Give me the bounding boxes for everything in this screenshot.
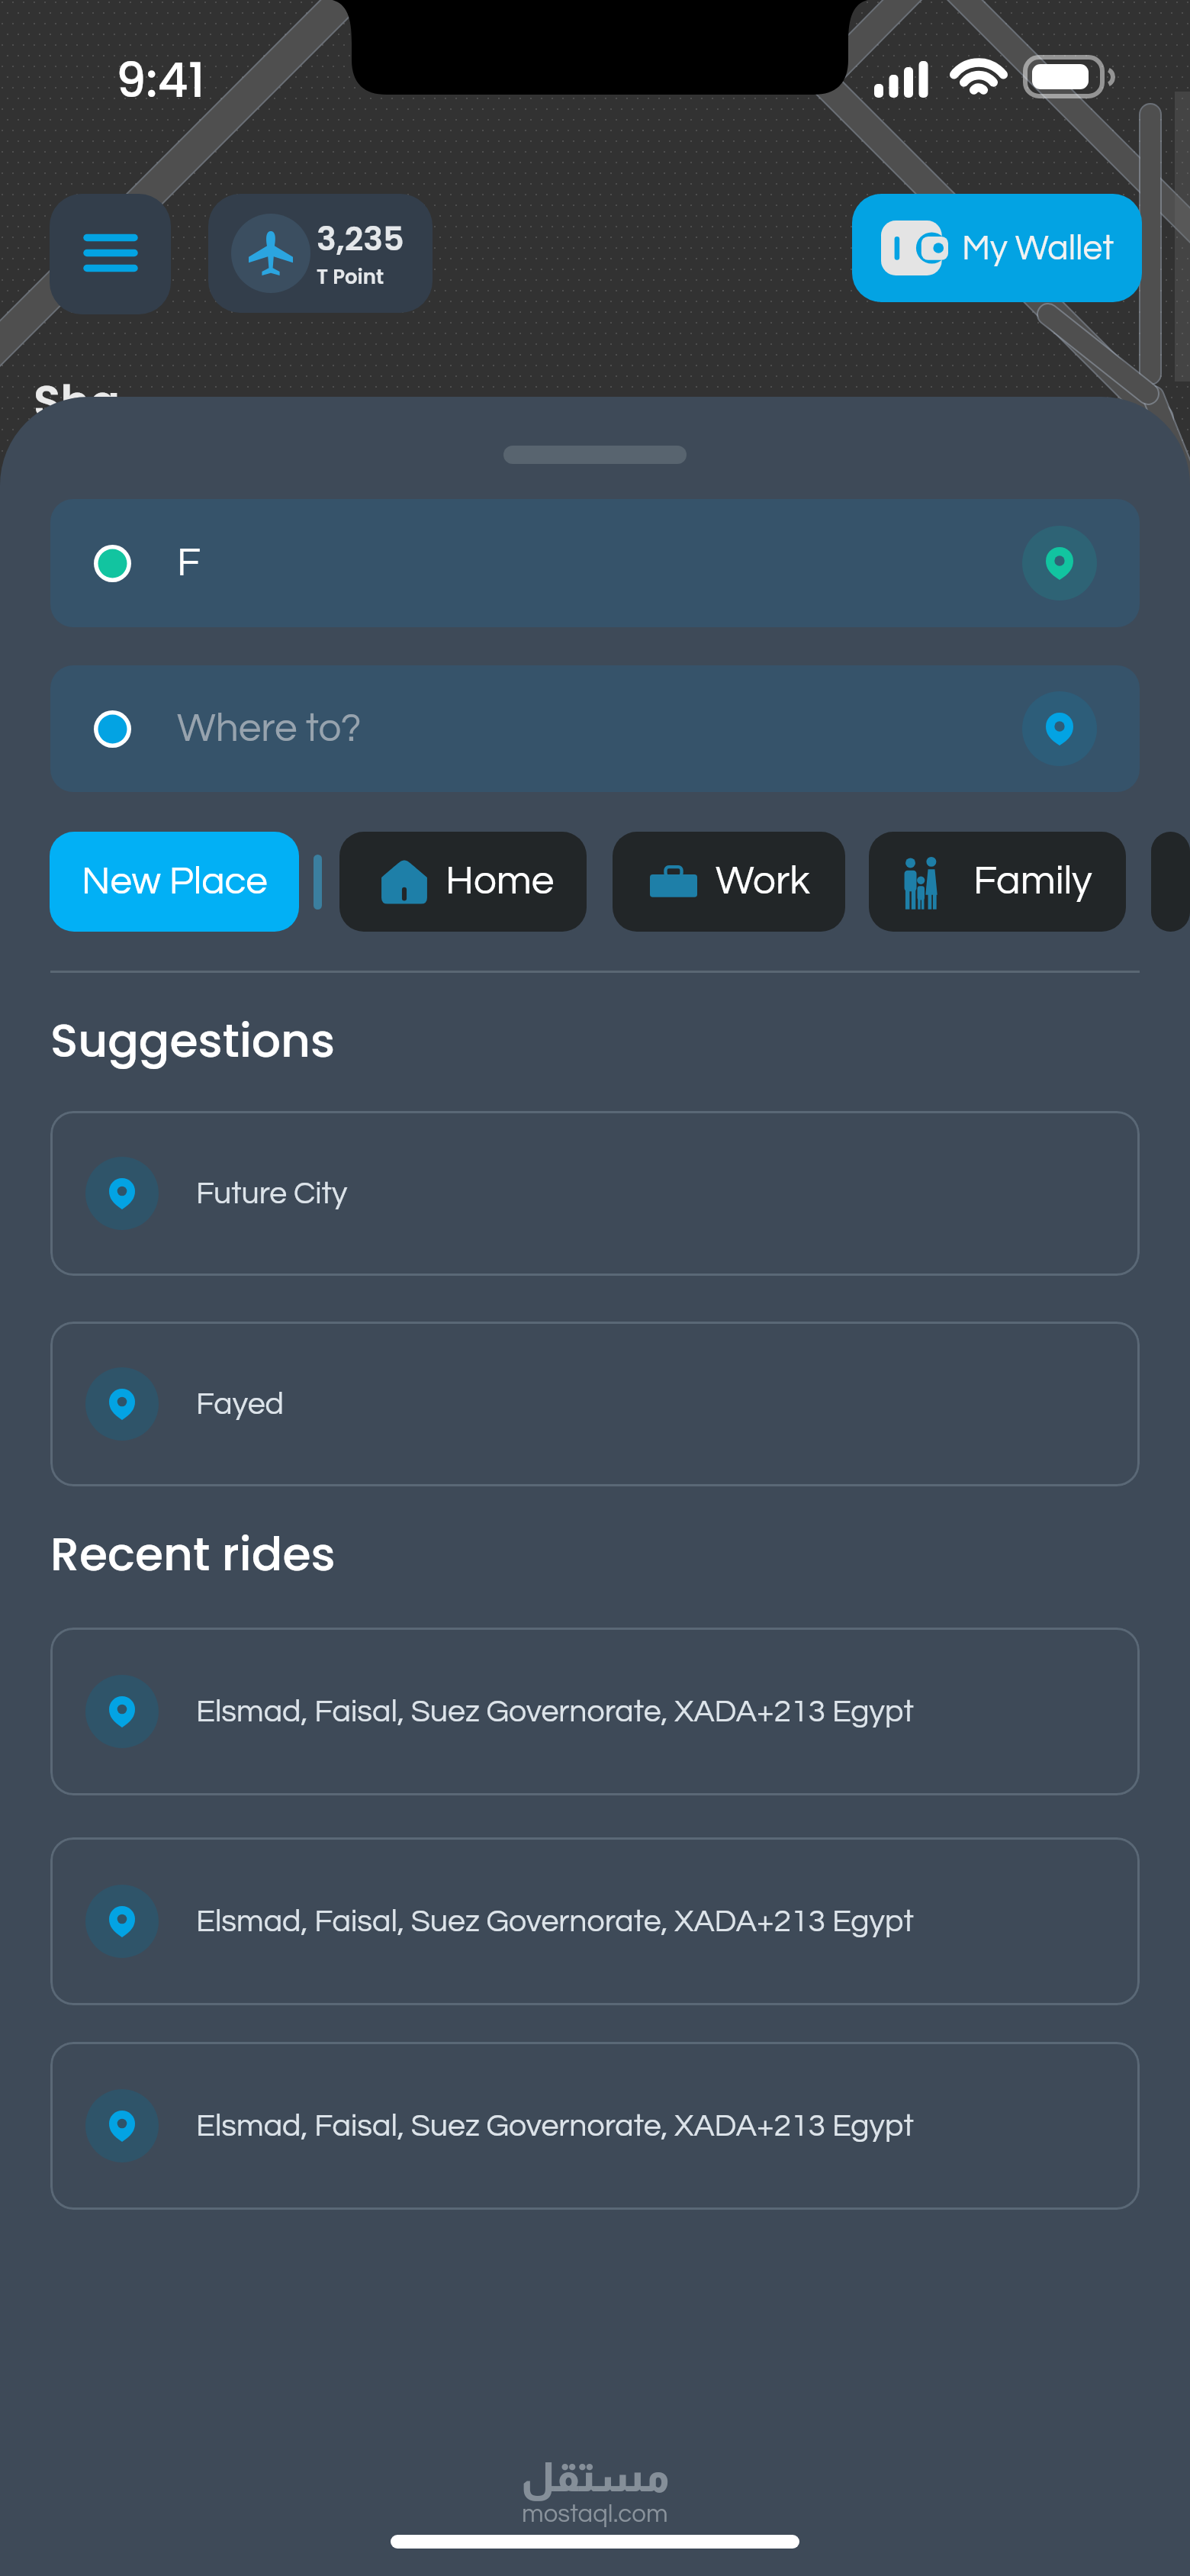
button[interactable]: Family <box>869 832 1126 932</box>
staticText: Elsmad, Faisal, Suez Governorate, XADA+2… <box>196 1905 914 1937</box>
button[interactable]: Friend <box>1151 832 1190 932</box>
button[interactable]: 3,235 <box>208 194 433 313</box>
staticText: Family <box>973 861 1092 903</box>
button[interactable]: Work <box>613 832 845 932</box>
staticText: Suggestions <box>50 1009 336 1073</box>
staticText: Recent rides <box>50 1522 336 1586</box>
button[interactable]: Elsmad, Faisal, Suez Governorate, XADA+2… <box>50 1837 1140 2005</box>
button[interactable]: Choose on map <box>1022 526 1097 601</box>
staticText: mostaql.com <box>522 2501 668 2527</box>
staticText: Work <box>716 861 810 903</box>
button[interactable]: Where to? <box>50 665 1140 792</box>
staticText: 9:41 <box>116 47 205 114</box>
staticText: Where to? <box>177 708 362 750</box>
button[interactable]: My Wallet <box>852 194 1142 302</box>
button[interactable]: Home <box>339 832 587 932</box>
button[interactable]: Menu <box>50 194 171 314</box>
button[interactable]: Future City <box>50 1111 1140 1276</box>
staticText: My Wallet <box>962 230 1114 266</box>
button[interactable]: New Place <box>50 832 299 932</box>
staticText: T Point <box>317 263 384 291</box>
button[interactable]: Choose on map <box>1022 691 1097 766</box>
staticText: Elsmad, Faisal, Suez Governorate, XADA+2… <box>196 1695 914 1728</box>
staticText: Fayed <box>196 1388 284 1420</box>
button[interactable]: Elsmad, Faisal, Suez Governorate, XADA+2… <box>50 2042 1140 2210</box>
button[interactable]: Fayed <box>50 1322 1140 1486</box>
staticText: مستقل <box>521 2455 670 2500</box>
button[interactable]: F <box>50 499 1140 627</box>
staticText: New Place <box>82 861 268 902</box>
button[interactable]: Elsmad, Faisal, Suez Governorate, XADA+2… <box>50 1628 1140 1795</box>
staticText: Home <box>445 861 555 903</box>
staticText: F <box>177 543 201 584</box>
staticText: Sha <box>34 371 120 433</box>
staticText: Future City <box>196 1177 348 1209</box>
staticText: 3,235 <box>317 216 404 262</box>
staticText: Elsmad, Faisal, Suez Governorate, XADA+2… <box>196 2110 914 2142</box>
